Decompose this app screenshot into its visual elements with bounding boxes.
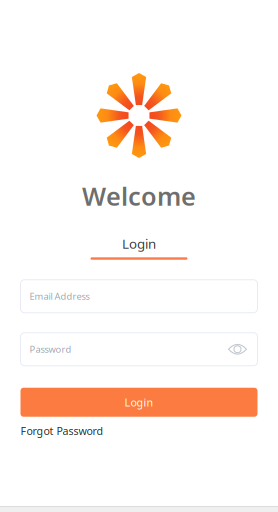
staticText: Forgot Password [20, 424, 103, 438]
staticText: Welcome [82, 179, 196, 213]
staticText: Login [124, 395, 153, 409]
button[interactable]: Show password [227, 343, 247, 356]
staticText: Password [29, 343, 71, 355]
button[interactable]: Login [90, 235, 187, 260]
button[interactable]: Login [20, 388, 257, 417]
staticText: Login [122, 235, 156, 252]
button[interactable]: Forgot Password [20, 424, 103, 438]
staticText: Email Address [29, 290, 89, 302]
